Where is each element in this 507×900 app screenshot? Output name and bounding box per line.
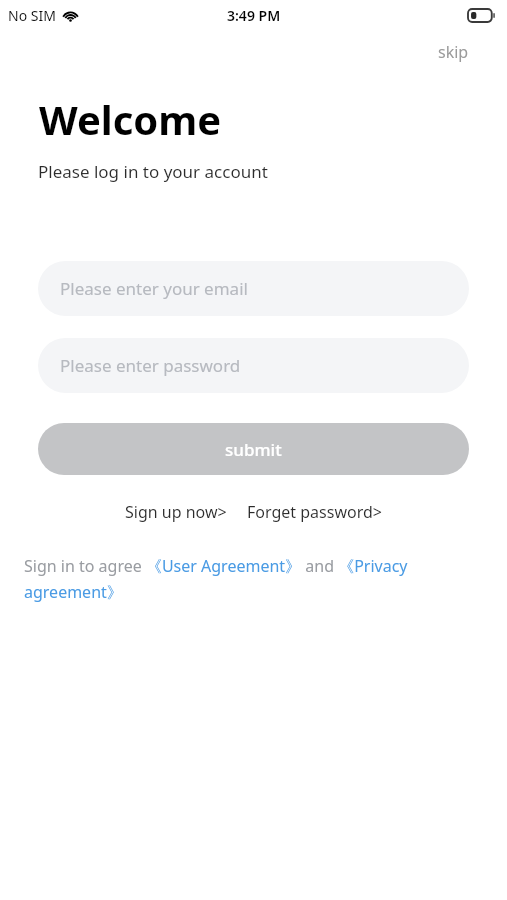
- staticText: skip: [438, 41, 469, 63]
- button[interactable]: Sign up now>: [123, 497, 229, 527]
- staticText: Sign up now>: [125, 501, 227, 523]
- staticText: 3:49 PM: [227, 6, 281, 25]
- staticText: Please enter your email: [60, 277, 248, 300]
- staticText: Please log in to your account: [38, 160, 268, 183]
- staticText: submit: [225, 438, 282, 461]
- button[interactable]: Forget password>: [245, 497, 384, 527]
- staticText: Forget password>: [247, 501, 382, 523]
- staticText: Please enter password: [60, 354, 241, 377]
- button[interactable]: Sign in to agree 《User Agreement》 and 《P…: [24, 555, 483, 602]
- button[interactable]: Please enter your email: [38, 261, 469, 316]
- staticText: Welcome: [39, 92, 222, 146]
- staticText: No SIM: [8, 6, 56, 25]
- button[interactable]: Please enter password: [38, 338, 469, 393]
- button[interactable]: submit: [38, 423, 469, 475]
- button[interactable]: skip: [424, 35, 483, 69]
- staticText: Sign in to agree 《User Agreement》 and 《P…: [24, 555, 483, 602]
